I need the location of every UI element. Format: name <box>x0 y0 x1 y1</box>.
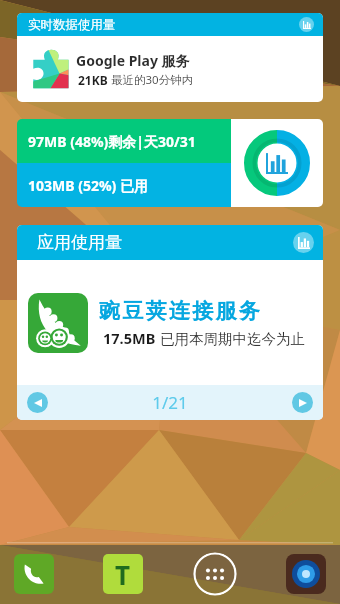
button[interactable]: 97MB (48%)剩余|天30/31 <box>17 119 231 163</box>
button[interactable]: Messages <box>103 554 143 594</box>
staticText: 103MB (52%) 已用 <box>28 176 148 195</box>
staticText: 应用使用量 <box>37 232 122 253</box>
staticText: T <box>115 557 131 592</box>
button[interactable]: Statistics <box>299 17 314 32</box>
staticText: 1/21 <box>48 391 292 414</box>
button[interactable]: Apps <box>193 552 237 596</box>
button[interactable]: Next <box>292 392 313 413</box>
staticText: 最近的30分钟内 <box>111 72 194 88</box>
staticText: 17.5MB <box>103 328 160 348</box>
staticText: 21KB <box>78 72 111 88</box>
staticText: 实时数据使用量 <box>28 17 116 33</box>
staticText: 已用本周期中迄今为止 <box>160 330 305 348</box>
button[interactable]: 103MB (52%) 已用 <box>17 163 231 207</box>
button[interactable] <box>231 119 323 207</box>
staticText: 豌豆荚连接服务 <box>99 298 263 324</box>
button[interactable]: Browser <box>286 554 326 594</box>
button[interactable]: Previous <box>27 392 48 413</box>
button[interactable]: Phone <box>14 554 54 594</box>
staticText: Google Play 服务 <box>76 51 190 70</box>
button[interactable]: Statistics <box>293 232 314 253</box>
staticText: 97MB (48%)剩余|天30/31 <box>28 132 196 151</box>
button[interactable]: 实时数据使用量 <box>17 13 323 102</box>
